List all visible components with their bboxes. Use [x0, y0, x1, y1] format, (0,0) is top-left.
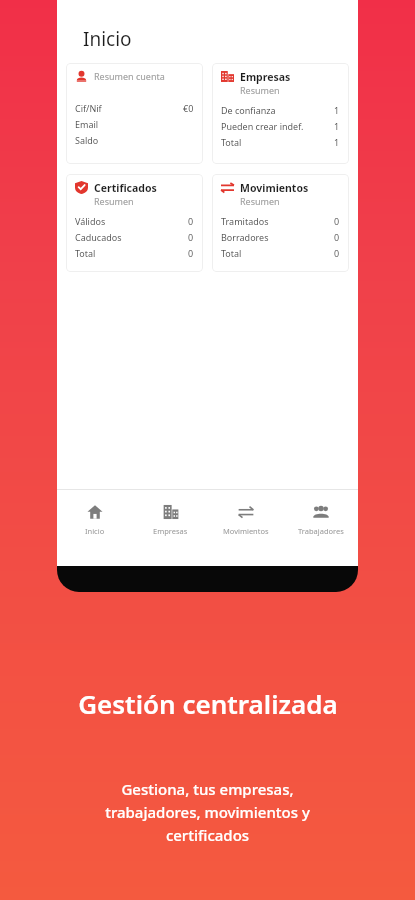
button[interactable]: Movimientos	[208, 490, 283, 566]
button[interactable]: Inicio	[57, 490, 133, 566]
other: Trabajadores	[313, 504, 329, 520]
staticText: Trabajadores	[298, 526, 344, 536]
staticText: Certificados	[94, 181, 157, 195]
staticText: Gestiona, tus empresas, trabajadores, mo…	[105, 779, 310, 845]
staticText: Empresas	[153, 526, 188, 536]
other: Inicio	[87, 504, 103, 520]
staticText: Tramitados	[221, 215, 269, 227]
staticText: €0	[183, 102, 194, 114]
staticText: 1	[334, 136, 340, 148]
other: Empresas	[221, 70, 234, 83]
other: Empresas	[163, 504, 179, 520]
staticText: Total	[221, 136, 242, 148]
staticText: Gestión centralizada	[78, 686, 338, 721]
staticText: Email	[75, 118, 99, 130]
staticText: Válidos	[75, 215, 106, 227]
other: Movimientos	[238, 504, 254, 520]
other: Movimientos	[221, 181, 234, 194]
staticText: Movimientos	[223, 526, 269, 536]
staticText: 0	[334, 231, 340, 243]
staticText: Resumen cuenta	[94, 70, 165, 82]
staticText: Saldo	[75, 134, 99, 146]
staticText: Inicio	[83, 26, 132, 52]
staticText: Cif/Nif	[75, 102, 102, 114]
button[interactable]: Empresas	[212, 63, 349, 164]
button[interactable]: Cuenta	[66, 63, 203, 164]
staticText: 0	[188, 215, 194, 227]
other: Certificados	[75, 181, 88, 194]
staticText: Total	[75, 247, 96, 259]
staticText: 0	[334, 215, 340, 227]
button[interactable]: Empresas	[133, 490, 208, 566]
staticText: Movimientos	[240, 181, 309, 195]
staticText: Caducados	[75, 231, 122, 243]
button[interactable]: Movimientos	[212, 174, 349, 272]
staticText: De confianza	[221, 104, 276, 116]
staticText: Inicio	[85, 526, 105, 536]
staticText: Borradores	[221, 231, 269, 243]
staticText: Resumen	[94, 195, 134, 207]
button[interactable]: Certificados	[66, 174, 203, 272]
staticText: Total	[221, 247, 242, 259]
staticText: 0	[188, 247, 194, 259]
staticText: Resumen	[240, 84, 280, 96]
staticText: 0	[334, 247, 340, 259]
button[interactable]: Trabajadores	[283, 490, 358, 566]
staticText: Empresas	[240, 70, 291, 84]
staticText: 1	[334, 104, 340, 116]
staticText: Pueden crear indef.	[221, 120, 304, 132]
other: Cuenta	[75, 70, 88, 83]
staticText: 0	[188, 231, 194, 243]
staticText: 1	[334, 120, 340, 132]
staticText: Resumen	[240, 195, 280, 207]
